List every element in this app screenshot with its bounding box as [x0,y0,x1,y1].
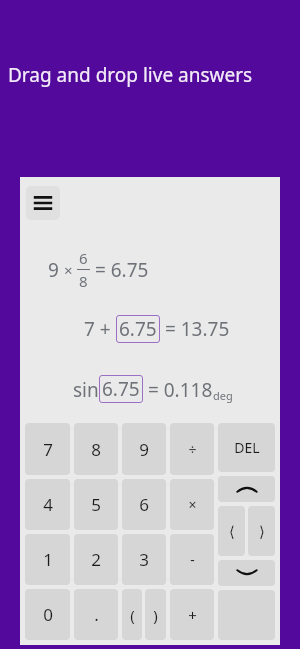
staticText: 6 [79,248,88,268]
button[interactable]: 6.75 [116,315,160,343]
staticText: 6 [139,493,149,516]
staticText: ÷ [188,440,197,459]
staticText: - [190,550,195,569]
staticText: = 13.75 [160,316,230,342]
staticText: 2 [91,548,101,571]
staticText: 1 [43,548,53,571]
staticText: deg [213,388,233,403]
staticText: 3 [139,548,149,571]
staticText: 5 [91,493,101,516]
staticText: Drag and drop live answers [8,62,253,88]
button[interactable]: ÷ [170,423,214,475]
button[interactable]: 9 [122,423,166,475]
staticText: × [188,495,197,514]
staticText: 9 [48,257,64,283]
button[interactable]: DEL [218,423,275,472]
staticText: sin [73,377,99,403]
button[interactable]: Next [218,560,275,586]
button[interactable]: ( [122,589,142,640]
staticText: ⟩ [259,523,265,540]
button[interactable]: . [74,589,118,640]
staticText: 6.75 [119,316,157,342]
button[interactable]: 1 [25,534,70,585]
button[interactable]: × [170,479,214,530]
staticText: = 0.118 [143,377,213,403]
staticText: 7 [43,438,53,461]
button[interactable]: Previous [218,476,275,502]
button[interactable]: 4 [25,479,70,530]
button[interactable]: Right [248,506,275,556]
staticText: 0 [43,603,53,626]
staticText: 7 + [84,316,116,342]
staticText: 9 [139,438,149,461]
button[interactable]: 5 [74,479,118,530]
staticText: ⟨ [229,523,235,540]
button[interactable]: 0 [25,589,70,640]
button[interactable]: 8 [74,423,118,475]
button[interactable]: - [170,534,214,585]
staticText: × [64,260,77,280]
button[interactable]: 7 [25,423,70,475]
button[interactable]: + [170,589,214,640]
staticText: 4 [43,493,53,516]
button[interactable]: 6 [122,479,166,530]
staticText: = 6.75 [90,257,149,283]
staticText: ( [130,605,135,625]
button[interactable]: 2 [74,534,118,585]
staticText: 8 [91,438,101,461]
staticText: + [188,605,197,625]
button[interactable]: Left [218,506,245,556]
staticText: 8 [79,271,88,291]
button[interactable]: ) [145,589,166,640]
staticText: . [94,603,99,626]
button[interactable]: 6.75 [99,375,143,403]
button[interactable]: Menu [26,186,60,220]
staticText: DEL [234,438,260,457]
staticText: ) [153,605,158,625]
button[interactable]: 3 [122,534,166,585]
staticText: 6.75 [102,376,140,402]
